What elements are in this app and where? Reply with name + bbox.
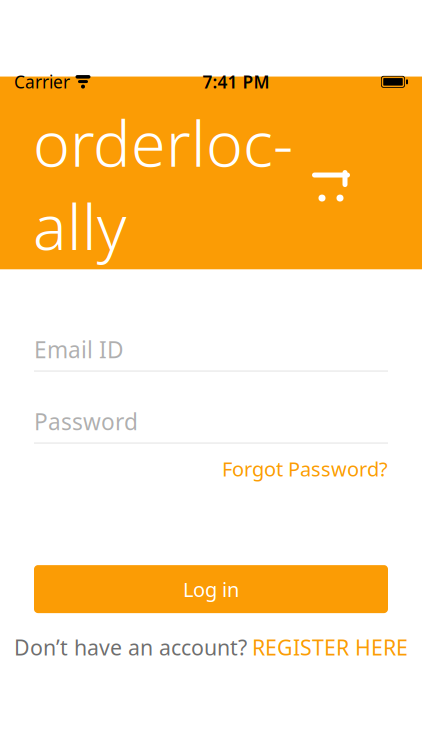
button[interactable]: Don’t have an account? xyxy=(14,629,408,665)
staticText: Log in xyxy=(183,576,239,602)
staticText: Password xyxy=(34,406,138,437)
staticText: REGISTER HERE xyxy=(252,633,408,661)
staticText: Don’t have an account? xyxy=(14,633,247,661)
staticText: Forgot Password? xyxy=(222,456,388,482)
staticText: orderlocally xyxy=(33,101,293,267)
button[interactable]: Forgot Password? xyxy=(222,452,388,486)
staticText: 7:41 PM xyxy=(202,70,269,93)
staticText: Carrier xyxy=(14,70,70,93)
staticText: Email ID xyxy=(34,334,124,365)
button[interactable]: Log in xyxy=(34,565,388,613)
